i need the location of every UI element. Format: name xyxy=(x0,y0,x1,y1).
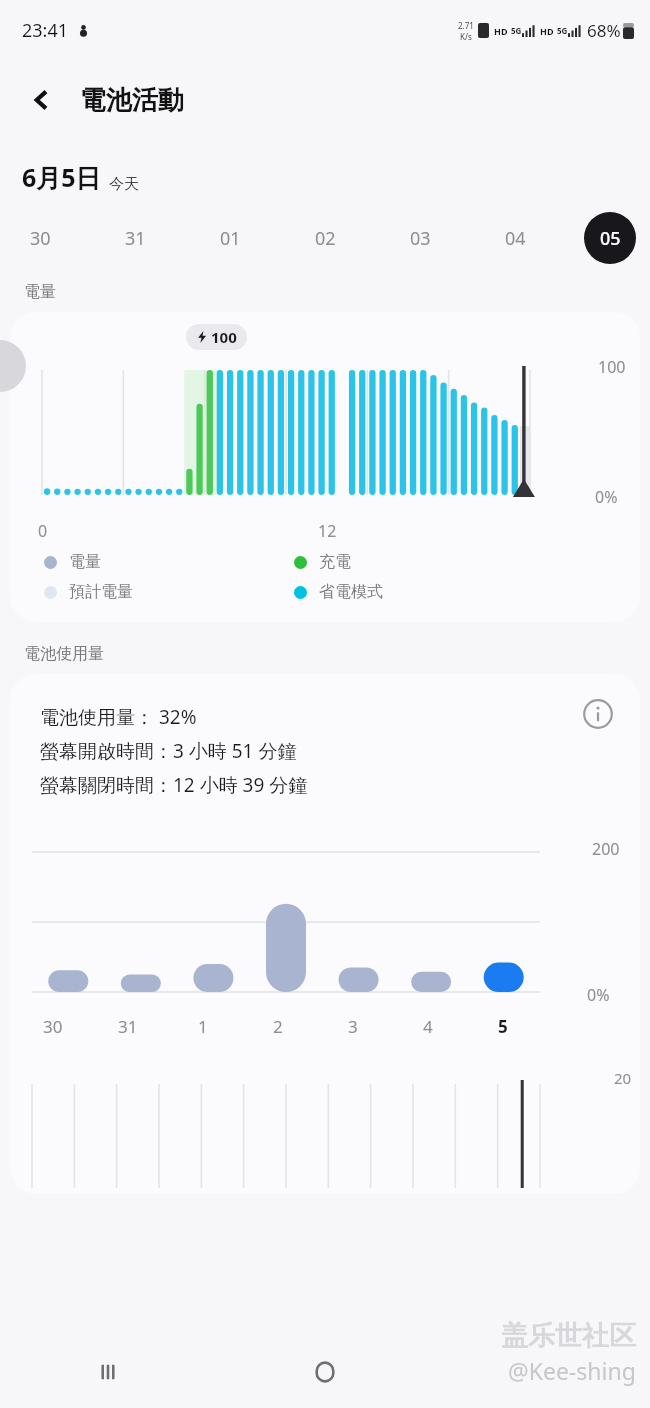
staticText: 03 xyxy=(410,226,431,251)
button[interactable]: 05 xyxy=(584,212,636,264)
staticText: 盖乐世社区 xyxy=(501,1319,636,1353)
button[interactable]: Home xyxy=(216,1336,433,1408)
staticText: 3 xyxy=(348,1015,358,1038)
staticText: 充電 xyxy=(319,552,351,572)
staticText: 螢幕開啟時間：3 小時 51 分鐘 xyxy=(40,738,297,764)
staticText: 05 xyxy=(600,226,621,251)
staticText: 5G xyxy=(511,25,522,36)
staticText: 04 xyxy=(505,226,526,251)
staticText: 01 xyxy=(220,226,241,251)
button[interactable]: Info xyxy=(578,694,618,734)
staticText: K/s xyxy=(460,31,472,42)
staticText: 電量 xyxy=(69,552,101,572)
staticText: 68% xyxy=(587,19,621,42)
staticText: 螢幕關閉時間：12 小時 39 分鐘 xyxy=(40,772,308,798)
staticText: 2 xyxy=(273,1015,283,1038)
staticText: 預計電量 xyxy=(69,582,133,602)
staticText: 02 xyxy=(315,226,336,251)
button[interactable]: 04 xyxy=(489,212,541,264)
button[interactable]: 30 xyxy=(14,212,66,264)
staticText: 0 xyxy=(38,520,48,542)
button[interactable]: Back xyxy=(16,74,68,126)
button[interactable]: 100 xyxy=(10,312,640,622)
button[interactable]: 02 xyxy=(299,212,351,264)
staticText: 2.71 xyxy=(458,20,474,31)
staticText: 1 xyxy=(198,1015,208,1038)
staticText: 0% xyxy=(587,984,610,1006)
button[interactable]: 31 xyxy=(109,212,161,264)
button[interactable]: Back xyxy=(433,1336,650,1408)
staticText: 今天 xyxy=(109,175,139,194)
staticText: @Kee-shing xyxy=(508,1355,636,1386)
staticText: 200 xyxy=(592,838,620,860)
staticText: 省電模式 xyxy=(319,582,383,602)
button[interactable]: Recents xyxy=(0,1336,216,1408)
staticText: 12 xyxy=(318,520,337,542)
staticText: HD xyxy=(540,25,554,37)
staticText: 20 xyxy=(614,1068,632,1088)
staticText: 電量 xyxy=(24,282,56,302)
staticText: 23:41 xyxy=(22,18,69,43)
staticText: 0% xyxy=(595,486,618,508)
staticText: 5G xyxy=(557,25,568,36)
staticText: 30 xyxy=(43,1015,63,1038)
staticText: 5 xyxy=(498,1015,508,1038)
staticText: HD xyxy=(494,25,508,37)
staticText: 31 xyxy=(125,226,146,251)
staticText: 電池活動 xyxy=(80,84,184,117)
staticText: 100 xyxy=(598,356,626,378)
staticText: 100 xyxy=(211,327,237,347)
staticText: 電池使用量： 32% xyxy=(40,704,197,730)
staticText: 31 xyxy=(118,1015,138,1038)
button[interactable]: 01 xyxy=(204,212,256,264)
staticText: 30 xyxy=(30,226,51,251)
staticText: 6月5日 xyxy=(22,160,101,194)
staticText: 電池使用量 xyxy=(24,644,104,664)
button[interactable]: 03 xyxy=(394,212,446,264)
button[interactable]: 電池使用量： 32% xyxy=(10,674,640,1194)
staticText: 4 xyxy=(423,1015,433,1038)
